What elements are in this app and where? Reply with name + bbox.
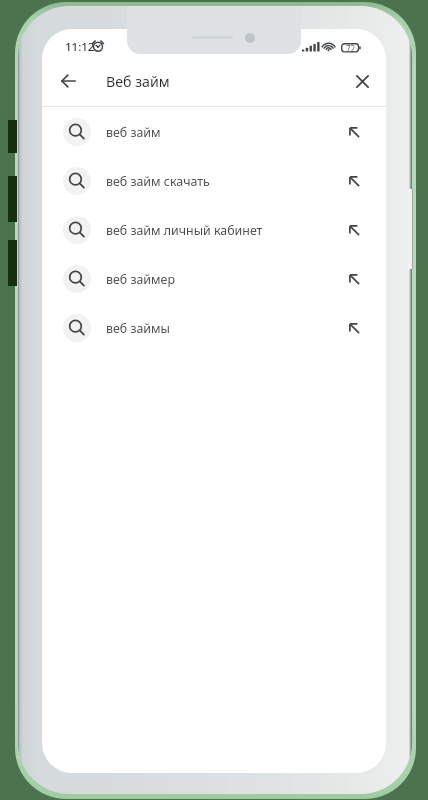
- button[interactable]: Back: [46, 59, 90, 103]
- staticText: 11:12: [65, 39, 95, 55]
- button[interactable]: веб займ скачать: [42, 156, 386, 205]
- staticText: 72: [346, 43, 356, 54]
- button[interactable]: веб займ: [42, 107, 386, 156]
- staticText: веб займ скачать: [106, 173, 210, 190]
- staticText: Веб займ: [106, 72, 170, 91]
- staticText: веб займы: [106, 320, 170, 337]
- staticText: веб займ личный кабинет: [106, 222, 263, 239]
- button[interactable]: веб займер: [42, 254, 386, 303]
- staticText: веб займ: [106, 124, 161, 141]
- staticText: веб займер: [106, 271, 175, 288]
- button[interactable]: веб займы: [42, 303, 386, 352]
- button[interactable]: Clear: [340, 59, 384, 103]
- button[interactable]: веб займ личный кабинет: [42, 205, 386, 254]
